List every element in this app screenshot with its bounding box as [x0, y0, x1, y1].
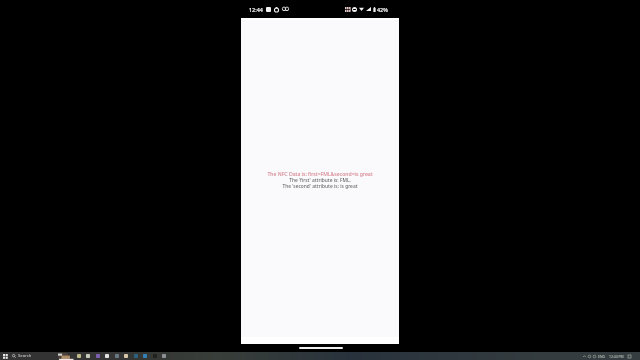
- button[interactable]: App 9: [162, 354, 166, 358]
- button[interactable]: Start: [3, 354, 8, 359]
- button[interactable]: App 1: [86, 354, 90, 358]
- staticText: 12:44: [249, 6, 263, 13]
- staticText: The NFC Data is: first=FML&second=is gre…: [241, 170, 399, 177]
- button[interactable]: App 4: [115, 354, 119, 358]
- staticText: The 'first' attribute is: FML,: [241, 177, 399, 184]
- button[interactable]: Search: [9, 353, 56, 359]
- button[interactable]: App 0: [77, 354, 81, 358]
- staticText: 12:44 PM: [609, 354, 624, 359]
- staticText: Search: [18, 353, 32, 359]
- staticText: The 'second' attribute is: is great: [241, 183, 399, 190]
- button[interactable]: Weather widget: [57, 352, 74, 360]
- button[interactable]: App 5: [124, 354, 128, 358]
- button[interactable]: App 6: [134, 354, 138, 358]
- staticText: 42%: [377, 6, 388, 13]
- staticText: ENG: [598, 354, 605, 359]
- button[interactable]: App 3: [105, 354, 109, 358]
- button[interactable]: App 7: [143, 354, 147, 358]
- button[interactable]: App 2: [96, 354, 100, 358]
